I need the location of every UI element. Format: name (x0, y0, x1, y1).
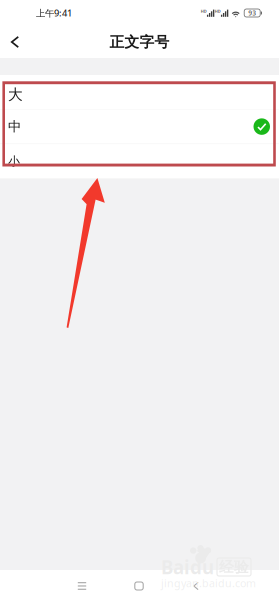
button[interactable]: 大 (0, 75, 279, 109)
staticText: 小 (8, 154, 20, 168)
staticText: 经验 (219, 558, 249, 576)
staticText: HD (201, 8, 207, 14)
staticText: 大 (8, 85, 23, 103)
staticText: 93 (248, 9, 256, 17)
staticText: 正文字号 (109, 33, 169, 51)
staticText: 中 (8, 118, 21, 135)
button[interactable]: Back (176, 570, 216, 602)
staticText: 上午9:41 (36, 7, 72, 19)
staticText: jingyan.baidu.com (161, 576, 256, 590)
button[interactable]: Back (0, 26, 30, 58)
staticText: HD (215, 8, 221, 14)
button[interactable]: Home (119, 570, 159, 602)
button[interactable]: 小 (0, 144, 279, 178)
button[interactable]: 中 (0, 110, 279, 144)
staticText: Baidu (161, 555, 214, 579)
button[interactable]: Recent apps (62, 570, 102, 602)
